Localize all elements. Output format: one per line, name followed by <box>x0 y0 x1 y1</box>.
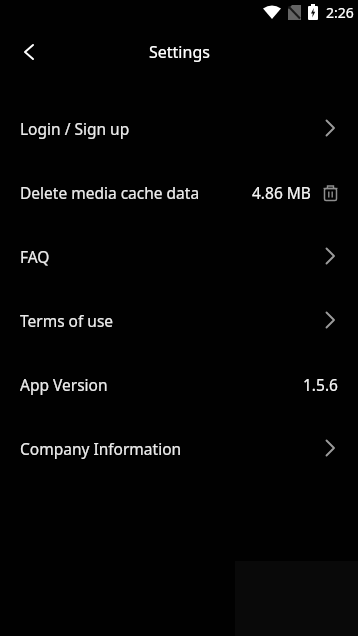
staticText: Settings <box>149 41 210 63</box>
staticText: Terms of use <box>20 310 114 331</box>
button[interactable]: Delete media cache data <box>0 160 358 224</box>
button[interactable]: Company Information <box>0 416 358 480</box>
staticText: Login / Sign up <box>20 118 130 139</box>
staticText: App Version <box>20 374 108 395</box>
button[interactable]: Terms of use <box>0 288 358 352</box>
button[interactable]: App Version <box>0 352 358 416</box>
staticText: 2:26 <box>326 3 354 22</box>
staticText: FAQ <box>20 246 50 267</box>
staticText: Delete media cache data <box>20 182 200 203</box>
staticText: Company Information <box>20 438 182 459</box>
button[interactable]: FAQ <box>0 224 358 288</box>
button[interactable] <box>16 39 42 65</box>
button[interactable]: Login / Sign up <box>0 96 358 160</box>
staticText: 4.86 MB <box>252 182 311 203</box>
staticText: 1.5.6 <box>303 374 338 395</box>
